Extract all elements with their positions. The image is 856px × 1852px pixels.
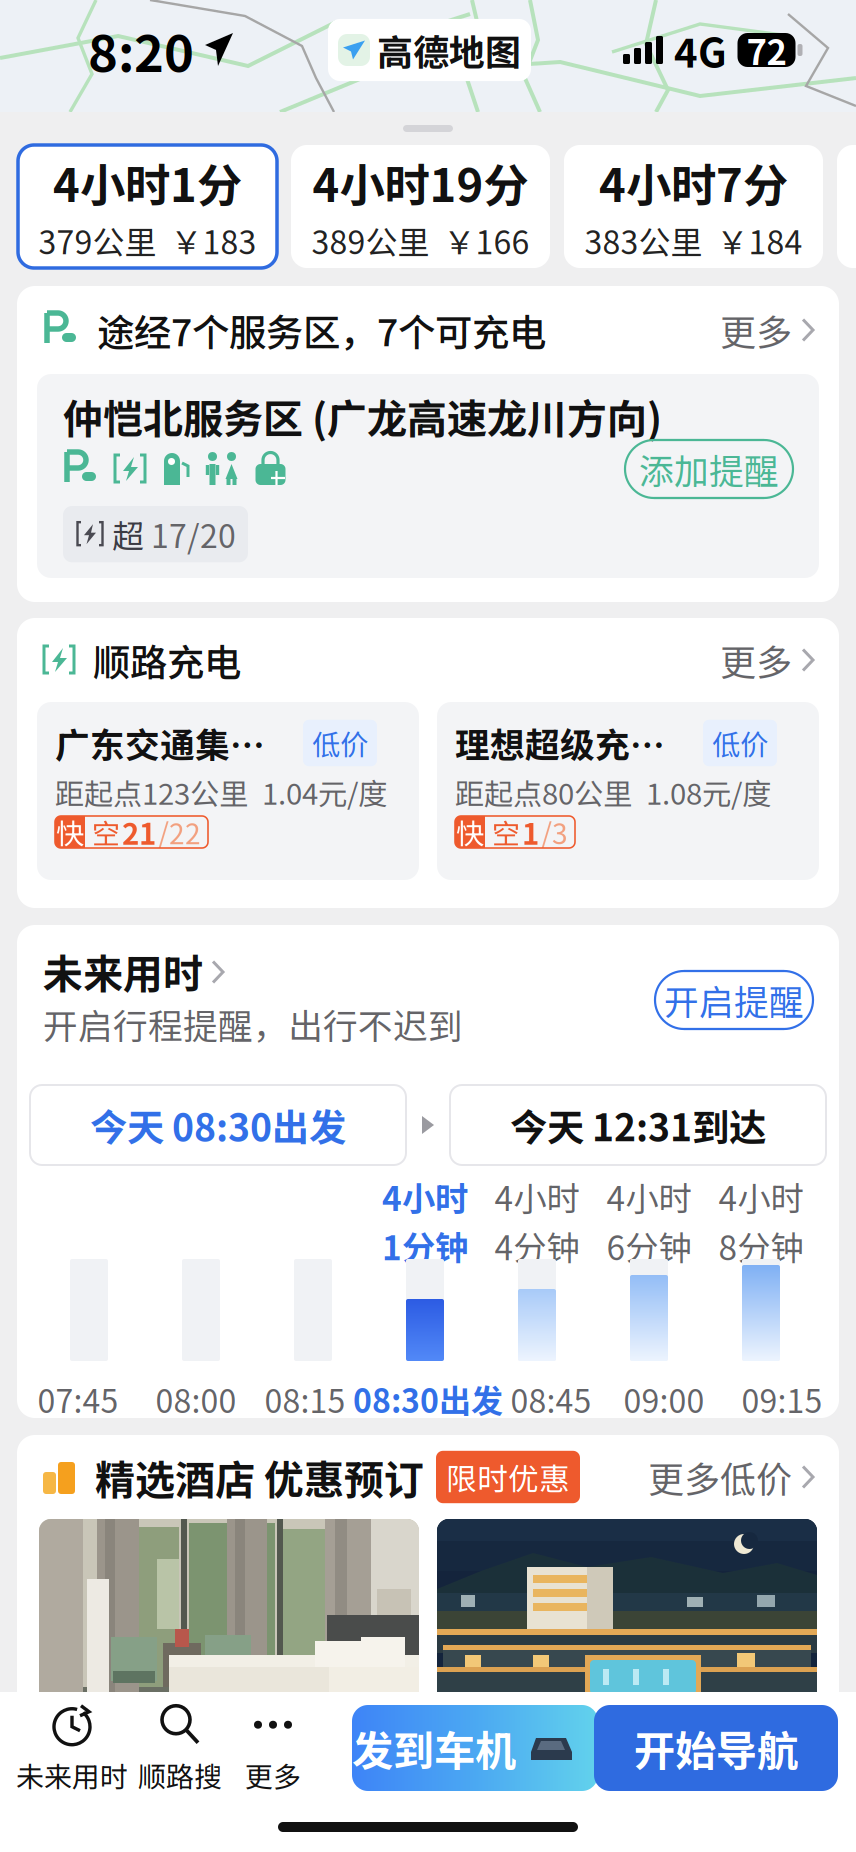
staticText: 4小时1分 [53,149,242,215]
staticText: 精选酒店 优惠预订 [77,1448,424,1506]
button[interactable]: 未来用时 [43,945,483,997]
staticText: 空 [492,812,520,852]
staticText: 未来用时 [16,1755,128,1795]
staticText: 开启提醒 [664,975,804,1025]
button[interactable]: 广东交通集团汽车… [37,702,419,880]
staticText: 今天 12:31到达 [510,1098,766,1152]
staticText: 距起点80公里 1.08元/度 [455,771,771,813]
staticText: 6分钟 [606,1221,691,1270]
staticText: 低价 [712,723,768,763]
button[interactable]: 发到车机 [334,1705,580,1791]
staticText: 8分钟 [718,1221,803,1270]
button[interactable]: 4小时19分 [291,145,550,268]
button[interactable]: 更多 [720,634,815,686]
staticText: 今天 08:30出发 [90,1098,346,1152]
staticText: 21 [122,811,156,853]
staticText: 低价 [312,723,368,763]
staticText: 发到车机 [352,1718,516,1778]
button[interactable]: 顺路搜 [132,1692,228,1804]
staticText: 8:20 [88,13,194,87]
button[interactable]: 理想超级充电站(… [437,702,819,880]
staticText: 08:45 [510,1376,591,1422]
staticText: 389公里 ￥166 [311,217,529,263]
staticText: 4G [665,21,736,79]
staticText: 1 [522,811,539,853]
staticText: 仲恺北服务区 (广龙高速龙川方向) [63,387,662,445]
button[interactable]: 更多低价 [648,1451,815,1503]
staticText: 379公里 ￥183 [38,217,256,263]
staticText: 4分钟 [494,1221,579,1270]
staticText: 08:30出发 [353,1376,503,1422]
button[interactable]: 更多 [228,1692,318,1804]
staticText: /22 [158,812,201,852]
staticText: 07:45 [37,1376,118,1422]
staticText: 72 [746,25,786,75]
staticText: 4小时 [494,1172,579,1220]
staticText: 距起点123公里 1.04元/度 [55,771,387,813]
button[interactable]: 未来用时 [12,1692,132,1804]
staticText: 09:00 [623,1376,704,1422]
staticText: 1分钟 [382,1221,468,1270]
button[interactable]: 4小时7分 [564,145,823,268]
button[interactable]: 4小时1分 [18,145,277,268]
staticText: 顺路充电 [77,633,241,687]
staticText: 广东交通集团汽车… [55,718,293,768]
staticText: 更多 [720,634,792,686]
staticText: 空 [92,812,120,852]
staticText: 08:00 [155,1376,236,1422]
staticText: 更多低价 [648,1451,792,1503]
staticText: 383公里 ￥184 [584,217,802,263]
button[interactable]: 添加提醒 [625,440,793,498]
staticText: 理想超级充电站(… [455,718,693,768]
staticText: 超 [112,511,144,557]
staticText: 顺路搜 [138,1755,222,1795]
staticText: 17/20 [151,511,236,557]
staticText: 4小时19分 [312,149,528,215]
staticText: 高德地图 [377,24,521,76]
staticText: 途经7个服务区，7个可充电 [81,303,546,357]
staticText: 开始导航 [634,1718,798,1778]
staticText: 更多 [720,304,792,356]
staticText: 4小时 [718,1172,803,1220]
staticText: 08:15 [264,1376,345,1422]
button[interactable]: 更多 [720,304,815,356]
staticText: 4小时 [606,1172,691,1220]
staticText: 更多 [245,1755,301,1795]
staticText: 09:15 [741,1376,822,1422]
staticText: 开启行程提醒，出行不迟到 [43,999,463,1049]
staticText: 快 [456,812,484,852]
button[interactable]: 开启提醒 [655,971,813,1029]
staticText: 4小时 [382,1172,468,1220]
staticText: 未来用时 [43,942,203,1000]
staticText: 4小时7分 [599,149,788,215]
button[interactable]: 开始导航 [594,1705,838,1791]
button[interactable]: 今天 08:30出发 [30,1085,406,1165]
staticText: 快 [56,812,84,852]
staticText: /3 [541,812,568,852]
staticText: 限时优惠 [446,1455,570,1499]
staticText: 添加提醒 [639,444,779,494]
